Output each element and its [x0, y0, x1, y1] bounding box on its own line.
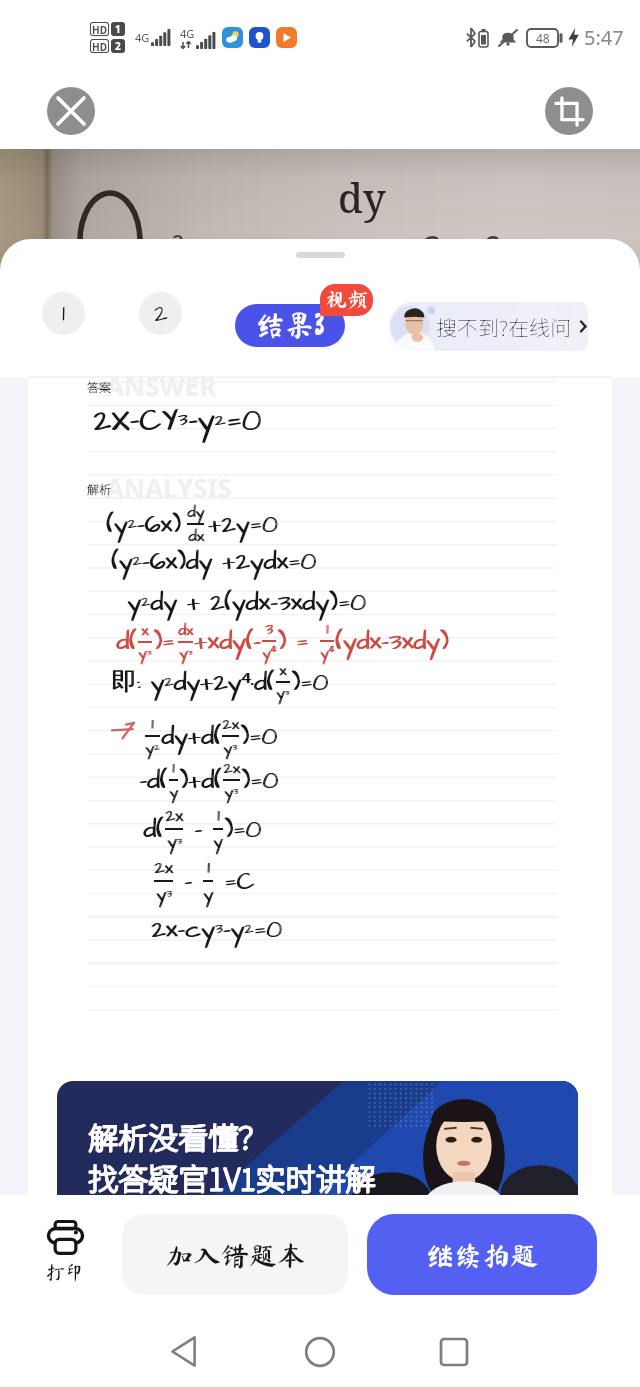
staticText: (y²-6x) [107, 507, 182, 542]
staticText: )= [153, 624, 175, 659]
staticText: y³ [277, 683, 291, 704]
staticText: y³ [139, 643, 153, 664]
button[interactable]: 1 [42, 292, 85, 335]
staticText: -d( [139, 763, 168, 798]
staticText: 找答疑官1V1实时讲解 [88, 1156, 376, 1195]
staticText: HD [92, 23, 107, 35]
staticText: )=0 [242, 763, 279, 798]
button[interactable]: 结果3 [235, 304, 345, 347]
staticText: =C [215, 864, 256, 899]
staticText: 打印 [46, 1262, 85, 1281]
staticText: y⁴ [263, 642, 277, 664]
staticText: y² [146, 737, 161, 759]
staticText: 视频 [326, 289, 368, 310]
staticText: dy [338, 170, 386, 224]
staticText: x [280, 660, 288, 681]
staticText: 2X-CY³-y²=0 [94, 399, 262, 442]
staticText: y [204, 882, 214, 907]
staticText: 解析没看懂？ [88, 1114, 268, 1157]
staticText: (y²-6x)dy +2ydx=0 [112, 544, 317, 579]
staticText: 2x [166, 804, 184, 828]
staticText: )+d( [180, 763, 223, 798]
staticText: 4G [135, 30, 150, 45]
staticText: ) = [277, 624, 319, 659]
staticText: (ydx-3xdy) [335, 624, 449, 659]
staticText: dx [179, 620, 194, 641]
staticText: y³ [156, 882, 172, 907]
staticText: +xdy(- [194, 624, 261, 659]
button[interactable]: 继续拍题 [367, 1214, 597, 1295]
staticText: 找答疑官1V1实时讲解 [89, 1155, 377, 1195]
staticText: 搜不到?在线问 [436, 312, 572, 342]
button[interactable]: Back [147, 1308, 219, 1387]
staticText: y³ [138, 643, 152, 664]
staticText: dx [178, 620, 193, 641]
button[interactable]: Close [47, 87, 95, 135]
button[interactable]: Crop [545, 87, 593, 135]
button[interactable]: 2 [139, 292, 182, 335]
staticText: +2y=0 [209, 507, 279, 542]
button[interactable]: 加入错题本 [122, 1214, 348, 1295]
staticText: 4G [180, 26, 195, 41]
staticText: y³ [276, 683, 290, 704]
staticText: y⁴ [262, 642, 276, 664]
staticText: +xdy(- [195, 624, 262, 659]
staticText: 即: y²dy+2y⁴·d( [111, 665, 275, 700]
staticText: 结果3 [256, 310, 325, 339]
staticText: - [174, 864, 202, 899]
staticText: d( [116, 624, 137, 659]
staticText: - [184, 812, 212, 847]
staticText: ANALYSIS [106, 470, 232, 505]
staticText: 解析没看懂？ [89, 1114, 269, 1157]
staticText: y⁴ [321, 642, 335, 664]
staticText: - [185, 812, 213, 847]
staticText: - [175, 864, 203, 899]
staticText: y³ [180, 643, 194, 664]
staticText: 48 [536, 30, 550, 46]
staticText: 2 [115, 39, 121, 53]
staticText: 2x [223, 713, 240, 735]
button[interactable]: Recents [418, 1308, 490, 1387]
staticText: dy [188, 501, 205, 523]
staticText: 1 [208, 855, 211, 880]
staticText: )=0 [241, 763, 278, 798]
staticText: 2 [154, 297, 168, 330]
staticText: +2y=0 [208, 507, 278, 542]
staticText: y³ [157, 882, 173, 907]
staticText: )+d( [179, 763, 222, 798]
staticText: ANSWER [106, 368, 217, 403]
staticText: d( [143, 812, 164, 847]
staticText: )=0 [241, 719, 278, 754]
staticText: 1 [172, 757, 175, 779]
staticText: 1 [207, 855, 210, 880]
staticText: x [279, 660, 287, 681]
staticText: 1 [173, 757, 176, 779]
staticText: dx [189, 525, 205, 547]
staticText: 2x [224, 757, 241, 779]
staticText: y³ [224, 781, 239, 803]
staticText: )=0 [291, 665, 328, 700]
button[interactable]: 打印 [40, 1220, 90, 1281]
button[interactable]: 解析没看懂？ [57, 1081, 578, 1195]
staticText: 2x [223, 757, 240, 779]
staticText: 2x [222, 713, 239, 735]
staticText: dy [187, 501, 204, 523]
staticText: -d( [140, 763, 169, 798]
staticText: 1 [327, 619, 329, 640]
staticText: y³ [179, 643, 193, 664]
staticText: y³ [167, 830, 182, 854]
staticText: HD [92, 40, 107, 52]
staticText: ²(x) [172, 228, 223, 274]
staticText: 1 [152, 713, 155, 735]
button[interactable]: Home [284, 1308, 356, 1387]
staticText: y² [145, 737, 160, 759]
staticText: )=0 [225, 812, 262, 847]
staticText: 2x [165, 804, 183, 828]
staticText: 即: y²dy+2y⁴·d( [112, 665, 276, 700]
staticText: (y²-6x)dy +2ydx=0 [111, 544, 316, 579]
staticText: 2x [155, 855, 174, 880]
staticText: +2x=0 [402, 224, 504, 273]
staticText: y [214, 830, 224, 854]
staticText: y³ [224, 737, 239, 759]
staticText: y [169, 781, 178, 803]
